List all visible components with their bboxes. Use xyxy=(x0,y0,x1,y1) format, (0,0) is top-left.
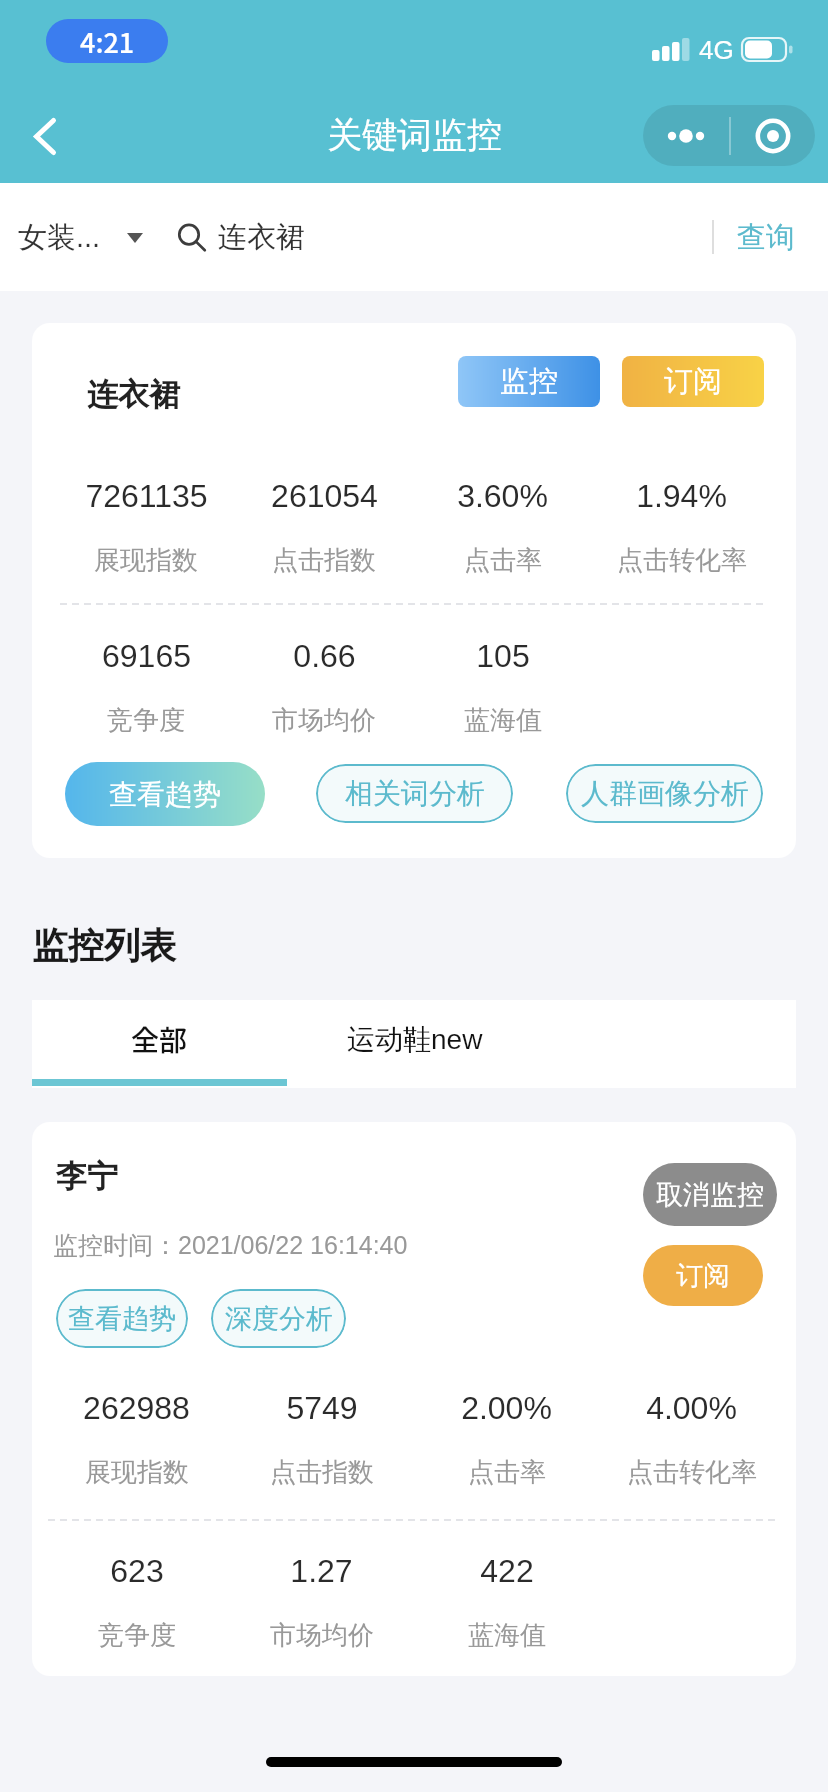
staticText: 监控时间：2021/06/22 16:14:40 xyxy=(53,1230,408,1261)
staticText: 展现指数 xyxy=(94,544,198,577)
staticText: 蓝海值 xyxy=(464,704,542,737)
button[interactable]: 监控 xyxy=(458,356,600,407)
staticText: 5749 xyxy=(286,1390,358,1426)
staticText: 连衣裙 xyxy=(87,375,180,414)
button[interactable]: 运动鞋new xyxy=(287,1000,542,1079)
button[interactable]: 深度分析 xyxy=(211,1289,346,1348)
staticText: 点击率 xyxy=(464,544,542,577)
staticText: 查看趋势 xyxy=(109,777,221,812)
staticText: 2.00% xyxy=(461,1390,552,1426)
button[interactable]: Back xyxy=(14,105,76,167)
staticText: 点击转化率 xyxy=(627,1456,757,1489)
staticText: 订阅 xyxy=(676,1259,730,1293)
staticText: 展现指数 xyxy=(85,1456,189,1489)
staticText: 监控列表 xyxy=(32,923,176,968)
staticText: 4:21 xyxy=(80,22,135,61)
staticText: 市场均价 xyxy=(272,704,376,737)
staticText: 261054 xyxy=(271,478,378,514)
button[interactable]: 全部 xyxy=(32,1000,287,1079)
staticText: 点击率 xyxy=(468,1456,546,1489)
button[interactable]: More options xyxy=(643,105,729,166)
staticText: 422 xyxy=(480,1553,534,1589)
staticText: 点击转化率 xyxy=(617,544,747,577)
staticText: 4G xyxy=(699,35,734,64)
button[interactable]: 人群画像分析 xyxy=(566,764,763,823)
button[interactable]: 查看趋势 xyxy=(56,1289,188,1348)
staticText: 市场均价 xyxy=(270,1619,374,1652)
staticText: 全部 xyxy=(131,1019,188,1060)
staticText: 人群画像分析 xyxy=(581,776,749,811)
staticText: 点击指数 xyxy=(270,1456,374,1489)
staticText: 69165 xyxy=(102,638,191,674)
staticText: 取消监控 xyxy=(656,1178,764,1212)
button[interactable]: 查看趋势 xyxy=(65,762,265,826)
staticText: 竞争度 xyxy=(107,704,185,737)
button[interactable]: 查询 xyxy=(737,219,795,256)
staticText: 蓝海值 xyxy=(468,1619,546,1652)
staticText: 4.00% xyxy=(646,1390,737,1426)
staticText: 李宁 xyxy=(56,1157,118,1196)
staticText: 1.94% xyxy=(636,478,727,514)
staticText: 监控 xyxy=(500,363,558,400)
staticText: 连衣裙 xyxy=(218,219,305,256)
staticText: 262988 xyxy=(83,1390,190,1426)
button[interactable]: 相关词分析 xyxy=(316,764,513,823)
button[interactable]: Close mini program xyxy=(731,105,815,166)
staticText: 关键词监控 xyxy=(327,113,502,157)
button[interactable]: 订阅 xyxy=(643,1245,763,1306)
staticText: 竞争度 xyxy=(98,1619,176,1652)
staticText: 0.66 xyxy=(293,638,356,674)
staticText: 点击指数 xyxy=(272,544,376,577)
staticText: 105 xyxy=(476,638,530,674)
button[interactable]: 女装... xyxy=(18,219,143,256)
staticText: 深度分析 xyxy=(225,1302,333,1336)
staticText: 3.60% xyxy=(457,478,548,514)
staticText: 1.27 xyxy=(290,1553,353,1589)
staticText: 623 xyxy=(110,1553,164,1589)
button[interactable]: 取消监控 xyxy=(643,1163,777,1226)
staticText: 7261135 xyxy=(85,478,208,514)
staticText: 运动鞋new xyxy=(347,1022,483,1057)
staticText: 查看趋势 xyxy=(68,1302,176,1336)
staticText: 查询 xyxy=(737,219,795,256)
staticText: 相关词分析 xyxy=(345,776,485,811)
button[interactable]: 订阅 xyxy=(622,356,764,407)
staticText: 女装... xyxy=(18,219,101,256)
staticText: 订阅 xyxy=(664,363,722,400)
